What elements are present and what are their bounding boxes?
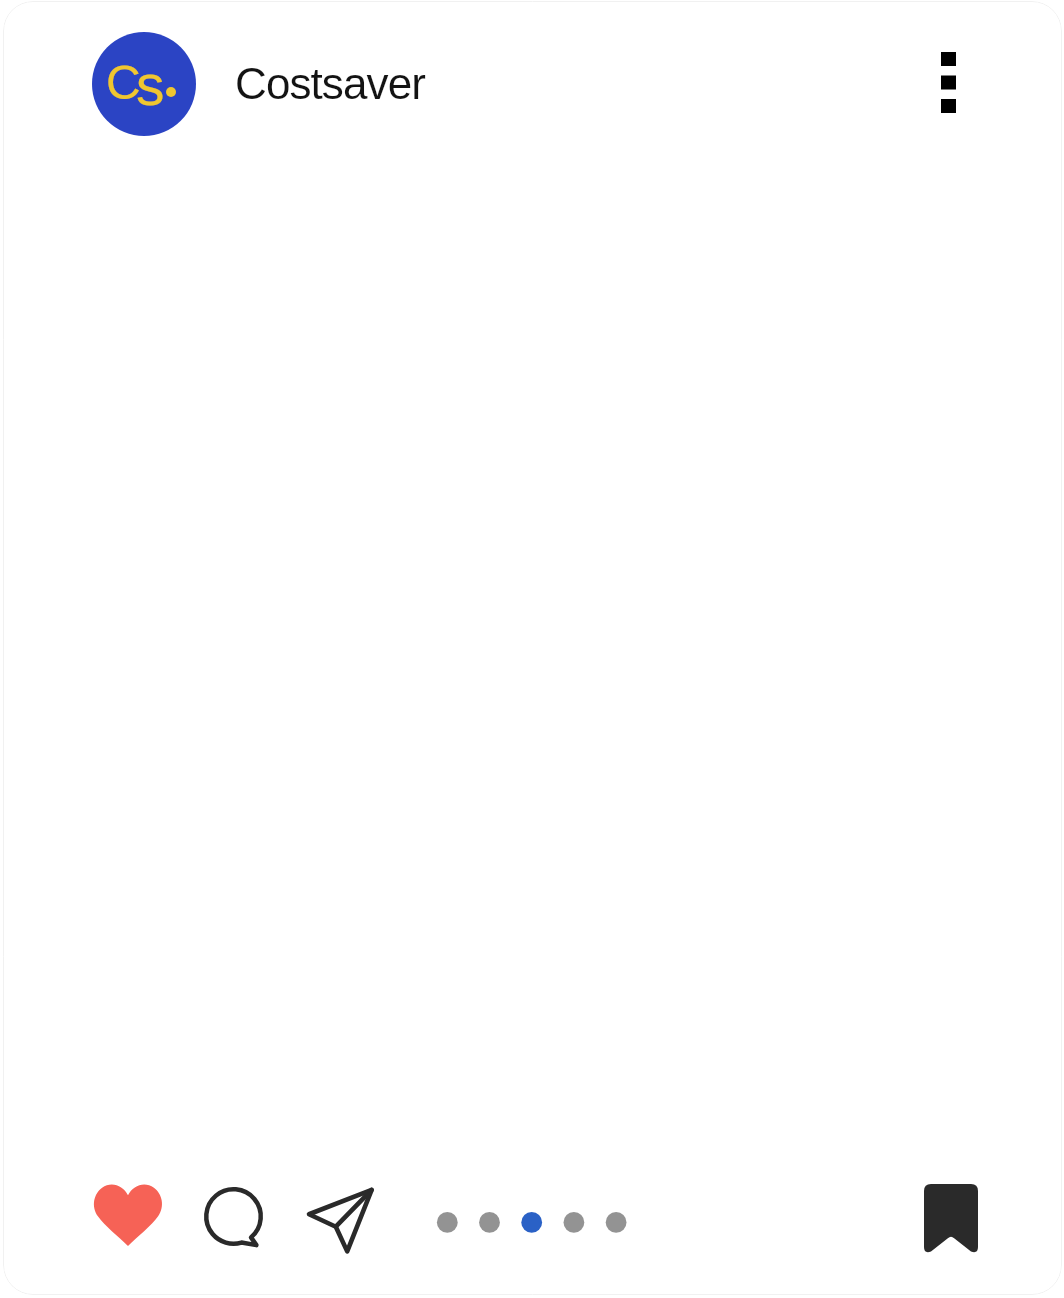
button[interactable]: Comment — [186, 1176, 281, 1266]
staticText: Costsaver — [235, 59, 425, 108]
button[interactable]: Like — [79, 1170, 176, 1260]
button[interactable]: Costsaver — [229, 47, 439, 119]
button[interactable]: More options — [908, 42, 988, 122]
button[interactable]: Share — [293, 1175, 388, 1265]
button[interactable]: Costsaver profile picture — [92, 32, 196, 136]
button[interactable]: Save — [903, 1174, 998, 1264]
staticText: s — [136, 53, 165, 117]
staticText: C — [106, 56, 141, 110]
